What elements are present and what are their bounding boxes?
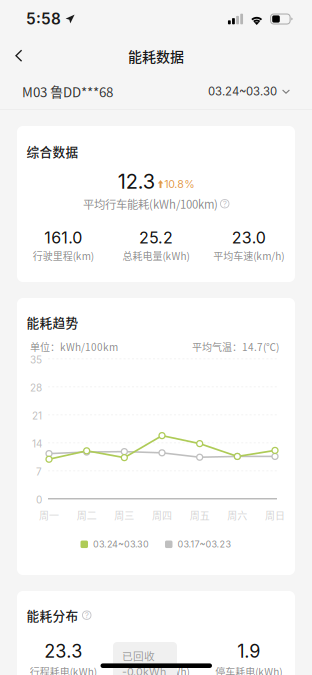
- staticText: 平均气温：14.7(℃): [192, 339, 279, 354]
- staticText: 03.24~03.30: [93, 539, 149, 550]
- staticText: 总耗电量(kWh): [122, 248, 189, 263]
- staticText: 161.0: [44, 228, 82, 247]
- button[interactable]: M03 鲁DD***68: [22, 76, 113, 107]
- staticText: 已回收: [122, 648, 155, 663]
- staticText: 综合数据: [26, 142, 78, 160]
- staticText: 周三: [114, 508, 134, 522]
- staticText: 能耗分布: [26, 606, 78, 624]
- staticText: 周五: [190, 508, 210, 522]
- staticText: 平均行车能耗(kWh/100km): [83, 195, 218, 212]
- staticText: 5:58: [26, 10, 61, 28]
- staticText: 25.2: [139, 228, 173, 247]
- button[interactable]: Back: [0, 39, 38, 72]
- staticText: 14: [32, 438, 42, 450]
- staticText: 周四: [152, 508, 172, 522]
- button[interactable]: 03.24~03.30: [208, 79, 290, 104]
- staticText: 单位：kWh/100km: [30, 339, 118, 354]
- staticText: 周二: [77, 508, 97, 522]
- staticText: 7: [36, 466, 42, 478]
- staticText: 12.3: [118, 169, 155, 193]
- staticText: 能耗数据: [128, 46, 184, 66]
- staticText: 0: [36, 494, 42, 506]
- staticText: 23.0: [232, 228, 266, 247]
- staticText: ?: [85, 610, 89, 620]
- staticText: 停车耗电(kWh): [215, 664, 282, 675]
- staticText: 平均车速(km/h): [213, 248, 284, 263]
- staticText: M03 鲁DD***68: [22, 82, 113, 101]
- staticText: 03.24~03.30: [208, 85, 277, 98]
- staticText: 21: [32, 410, 42, 422]
- staticText: 28: [30, 382, 42, 394]
- staticText: 23.3: [44, 640, 82, 662]
- staticText: 周六: [227, 508, 247, 522]
- staticText: 03.17~03.23: [177, 539, 231, 550]
- staticText: 35: [30, 354, 42, 366]
- staticText: 行驶里程(km): [33, 248, 94, 263]
- staticText: 空调耗电(kWh): [122, 664, 189, 675]
- staticText: 能耗趋势: [26, 313, 78, 331]
- staticText: 周一: [39, 508, 59, 522]
- staticText: ?: [223, 199, 227, 209]
- staticText: 0.0: [142, 640, 169, 662]
- staticText: 周日: [265, 508, 285, 522]
- staticText: 10.8%: [164, 178, 194, 190]
- staticText: 1.9: [237, 640, 260, 662]
- staticText: -0.0kWh: [122, 665, 166, 675]
- staticText: 行程耗电(kWh): [30, 664, 97, 675]
